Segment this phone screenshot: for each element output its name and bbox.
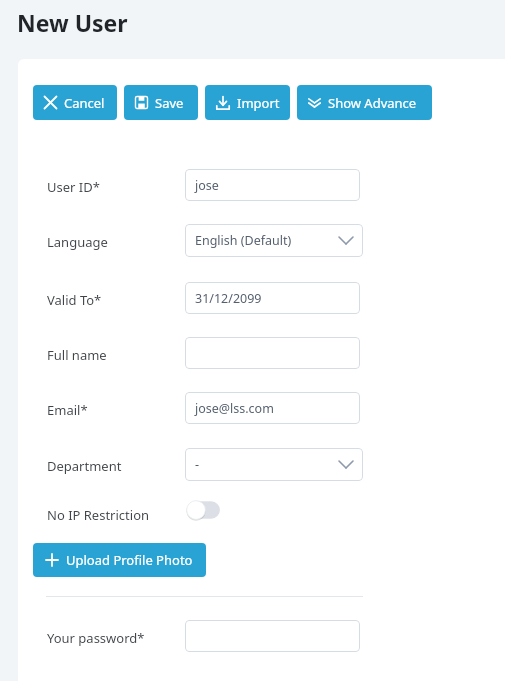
staticText: 31/12/2099 (195, 290, 262, 307)
button[interactable] (185, 620, 360, 652)
staticText: - (195, 456, 200, 473)
staticText: jose (195, 177, 219, 194)
button[interactable]: English (Default) (185, 224, 363, 257)
staticText: New User (17, 7, 128, 38)
button[interactable]: Import (205, 85, 290, 120)
button[interactable]: No IP Restriction toggle (185, 498, 223, 522)
staticText: Your password* (47, 629, 145, 647)
button[interactable] (185, 337, 360, 369)
button[interactable]: - (185, 448, 363, 481)
staticText: Upload Profile Photo (66, 551, 193, 569)
staticText: Email* (47, 401, 88, 419)
staticText: Save (155, 94, 184, 112)
button[interactable]: jose (185, 169, 360, 201)
staticText: Cancel (64, 94, 105, 112)
staticText: Import (237, 94, 280, 112)
button[interactable]: 31/12/2099 (185, 282, 360, 314)
staticText: Full name (47, 346, 107, 364)
button[interactable]: jose@lss.com (185, 392, 360, 424)
button[interactable]: Save (124, 85, 198, 120)
staticText: Valid To* (47, 291, 102, 309)
button[interactable]: Cancel (33, 85, 117, 120)
staticText: jose@lss.com (195, 400, 274, 417)
button[interactable]: Show Advance (297, 85, 432, 120)
button[interactable]: Upload Profile Photo (33, 543, 206, 577)
staticText: No IP Restriction (47, 506, 150, 524)
staticText: Language (47, 233, 108, 251)
staticText: Department (47, 457, 122, 475)
staticText: English (Default) (195, 232, 292, 249)
staticText: Show Advance (328, 94, 417, 112)
staticText: User ID* (47, 178, 100, 196)
